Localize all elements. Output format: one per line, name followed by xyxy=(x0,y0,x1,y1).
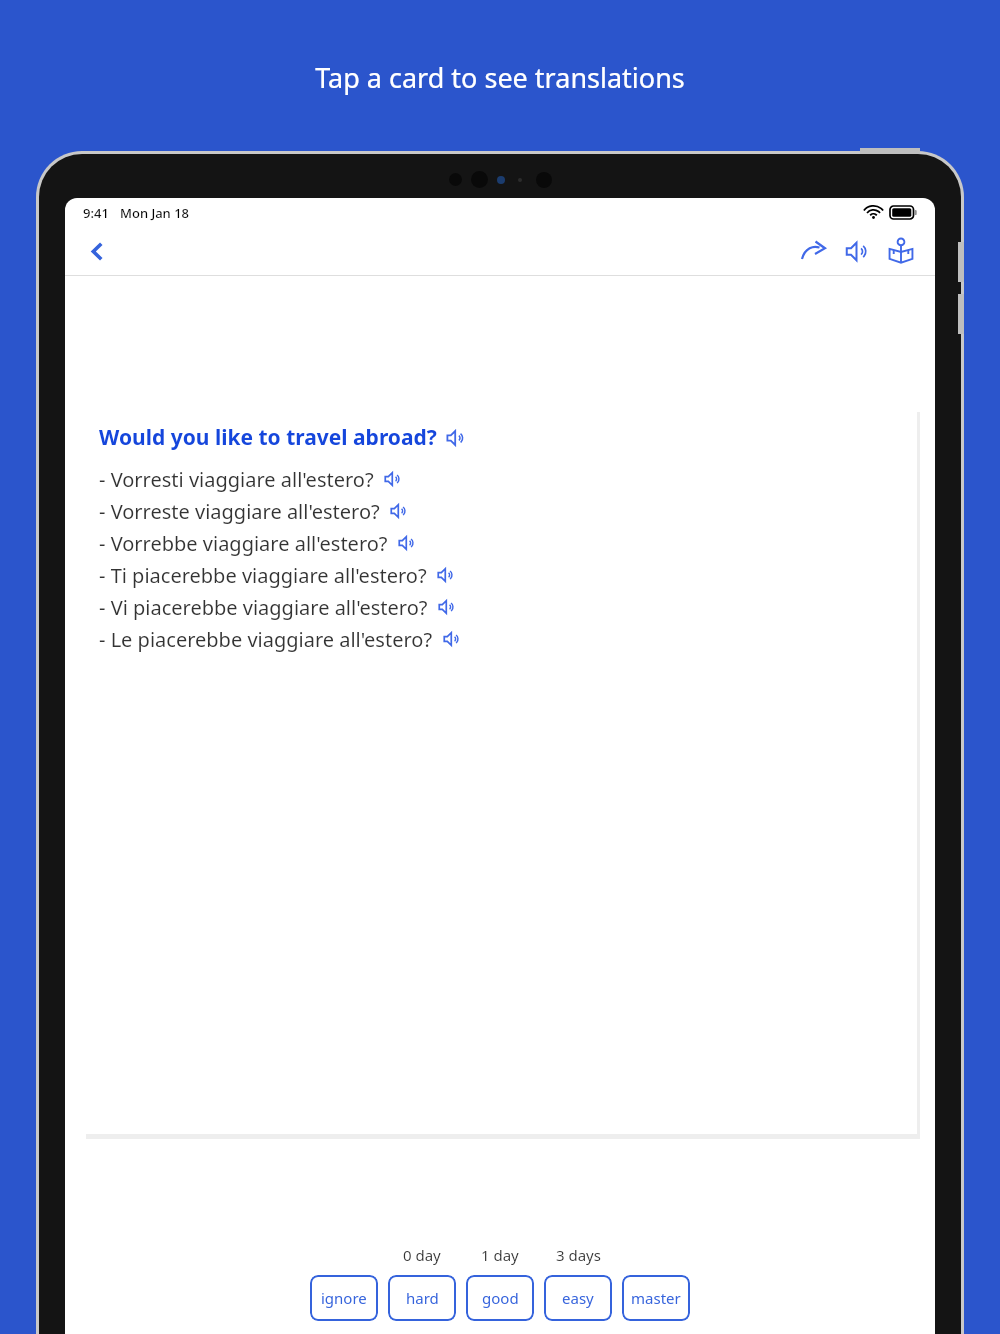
staticText: good xyxy=(482,1288,519,1308)
staticText: - Ti piacerebbe viaggiare all'estero? xyxy=(99,562,427,589)
staticText: Would you like to travel abroad? xyxy=(99,423,437,452)
staticText: 3 days xyxy=(556,1245,601,1265)
staticText: - Vorrebbe viaggiare all'estero? xyxy=(99,530,388,557)
staticText: ignore xyxy=(321,1288,367,1308)
button[interactable]: Share xyxy=(791,229,835,273)
staticText: 0 day xyxy=(403,1245,441,1265)
staticText: 9:41 xyxy=(83,204,109,222)
staticText: Mon Jan 18 xyxy=(120,204,190,222)
staticText: master xyxy=(631,1288,681,1308)
staticText: 1 day xyxy=(481,1245,519,1265)
button[interactable]: Play translation xyxy=(443,630,461,648)
staticText: easy xyxy=(562,1288,594,1308)
button[interactable]: Back xyxy=(75,229,119,273)
button[interactable]: Dictionary xyxy=(879,229,923,273)
button[interactable]: Play translation xyxy=(384,470,402,488)
button[interactable]: Play translation xyxy=(390,502,408,520)
staticText: - Vi piacerebbe viaggiare all'estero? xyxy=(99,594,428,621)
staticText: - Le piacerebbe viaggiare all'estero? xyxy=(99,626,433,653)
button[interactable]: Play translation xyxy=(398,534,416,552)
button[interactable]: Would you like to travel abroad? xyxy=(83,407,917,1134)
button[interactable]: Play phrase xyxy=(446,428,466,448)
button[interactable]: hard xyxy=(388,1275,456,1321)
button[interactable]: Play translation xyxy=(438,598,456,616)
staticText: hard xyxy=(406,1288,439,1308)
staticText: - Vorreste viaggiare all'estero? xyxy=(99,498,380,525)
button[interactable]: master xyxy=(622,1275,690,1321)
button[interactable]: easy xyxy=(544,1275,612,1321)
button[interactable]: good xyxy=(466,1275,534,1321)
button[interactable]: ignore xyxy=(310,1275,378,1321)
button[interactable]: Play translation xyxy=(437,566,455,584)
staticText: - Vorresti viaggiare all'estero? xyxy=(99,466,374,493)
staticText: Tap a card to see translations xyxy=(0,59,1000,96)
button[interactable]: Play audio xyxy=(835,229,879,273)
